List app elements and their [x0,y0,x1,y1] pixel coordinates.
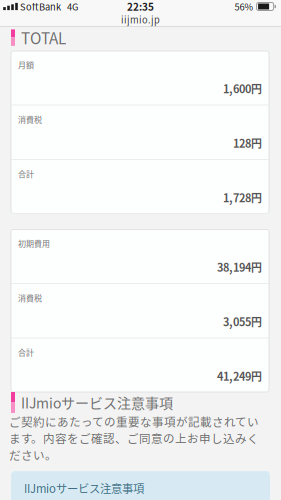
staticText: 3,055円 [223,314,262,329]
staticText: 56% [235,0,254,13]
staticText: IIJmioサービス注意事項 [24,480,144,496]
staticText: 合計 [18,168,34,180]
staticText: 消費税 [18,113,42,125]
button[interactable]: IIJmioサービス注意事項 [11,471,270,500]
staticText: TOTAL [21,26,66,49]
staticText: 41,249円 [217,368,262,384]
staticText: IIJmioサービス注意事項 [21,392,173,413]
staticText: 22:35 [127,0,154,14]
staticText: 合計 [18,346,34,358]
staticText: 38,194円 [217,259,262,275]
staticText: 消費税 [18,292,42,304]
staticText: SoftBank [20,0,61,13]
staticText: 1,600円 [223,81,262,96]
staticText: 128円 [233,135,262,151]
staticText: 4G [67,0,78,13]
staticText: 初期費用 [18,237,50,249]
staticText: 月額 [18,59,34,71]
staticText: ご契約にあたっての重要な事項が記載されています。内容をご確認、ご同意の上お申し込… [9,413,259,463]
staticText: iijmio.jp [121,13,160,26]
staticText: 1,728円 [223,190,262,205]
